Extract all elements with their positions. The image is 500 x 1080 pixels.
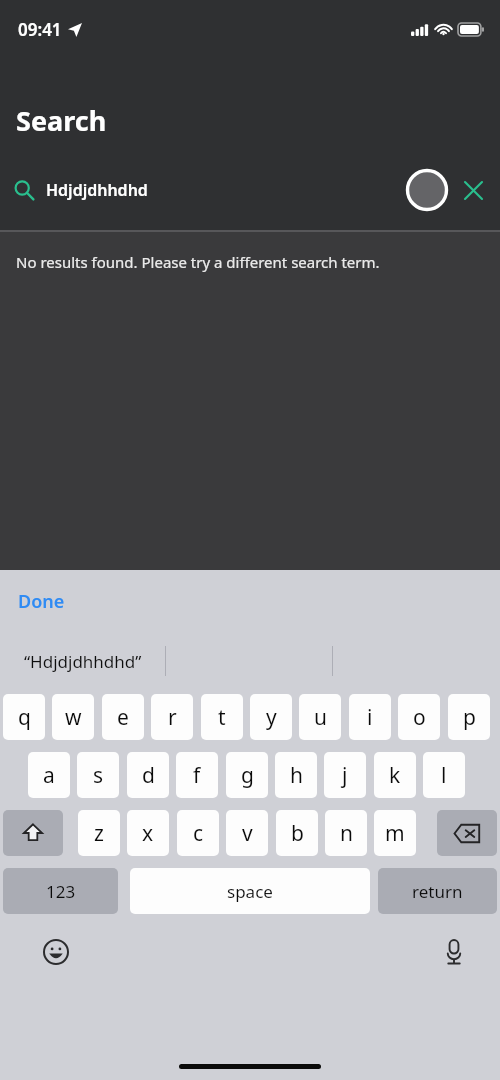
button[interactable]: g xyxy=(226,752,268,798)
button[interactable]: “Hdjdjdhhdhd” xyxy=(0,632,165,690)
button[interactable]: Backspace xyxy=(437,810,497,856)
staticText: Hdjdjdhhdhd xyxy=(46,179,148,201)
staticText: No results found. Please try a different… xyxy=(16,252,380,272)
staticText: 123 xyxy=(46,880,76,903)
button[interactable]: b xyxy=(276,810,318,856)
button[interactable]: s xyxy=(77,752,119,798)
button[interactable]: c xyxy=(177,810,219,856)
button[interactable]: Done xyxy=(12,583,71,620)
staticText: u xyxy=(314,703,327,732)
staticText: z xyxy=(94,819,104,848)
staticText: a xyxy=(43,761,55,790)
button[interactable]: i xyxy=(349,694,391,740)
staticText: j xyxy=(342,761,348,790)
button[interactable]: r xyxy=(151,694,193,740)
button[interactable]: n xyxy=(325,810,367,856)
button[interactable]: f xyxy=(176,752,218,798)
staticText: g xyxy=(241,761,254,790)
button[interactable]: l xyxy=(423,752,465,798)
button[interactable]: m xyxy=(374,810,416,856)
button[interactable]: z xyxy=(78,810,120,856)
button[interactable]: q xyxy=(3,694,45,740)
staticText: c xyxy=(193,819,204,848)
staticText: “Hdjdjdhhdhd” xyxy=(24,650,142,673)
staticText: m xyxy=(385,819,405,848)
staticText: 09:41 xyxy=(18,18,62,41)
button[interactable]: u xyxy=(299,694,341,740)
button[interactable]: 123 xyxy=(3,868,118,914)
button[interactable]: k xyxy=(374,752,416,798)
staticText: p xyxy=(463,703,476,732)
button[interactable]: o xyxy=(398,694,440,740)
staticText: b xyxy=(291,819,304,848)
button[interactable]: return xyxy=(378,868,497,914)
button[interactable]: p xyxy=(448,694,490,740)
button[interactable]: Profile xyxy=(404,167,450,213)
staticText: Done xyxy=(18,589,65,614)
button[interactable]: a xyxy=(28,752,70,798)
staticText: s xyxy=(93,761,104,790)
button[interactable]: Shift xyxy=(3,810,63,856)
staticText: return xyxy=(412,880,463,903)
button[interactable]: y xyxy=(250,694,292,740)
button[interactable]: j xyxy=(324,752,366,798)
staticText: o xyxy=(413,703,426,732)
staticText: k xyxy=(389,761,401,790)
staticText: d xyxy=(142,761,155,790)
staticText: t xyxy=(218,703,226,732)
staticText: q xyxy=(18,703,31,732)
staticText: Search xyxy=(16,102,107,139)
staticText: w xyxy=(65,703,82,732)
staticText: i xyxy=(367,703,373,732)
button[interactable]: h xyxy=(275,752,317,798)
button[interactable]: e xyxy=(102,694,144,740)
button[interactable]: w xyxy=(52,694,94,740)
staticText: e xyxy=(117,703,129,732)
staticText: r xyxy=(168,703,177,732)
staticText: f xyxy=(193,761,201,790)
button[interactable]: space xyxy=(130,868,370,914)
staticText: y xyxy=(266,703,277,732)
button[interactable]: Dictation xyxy=(432,930,476,974)
staticText: n xyxy=(340,819,353,848)
button[interactable]: x xyxy=(127,810,169,856)
button[interactable]: Clear search xyxy=(456,173,490,207)
button[interactable]: Emoji keyboard xyxy=(34,930,78,974)
button[interactable]: d xyxy=(127,752,169,798)
staticText: space xyxy=(227,880,273,903)
staticText: v xyxy=(242,819,253,848)
staticText: x xyxy=(142,819,154,848)
button[interactable]: t xyxy=(201,694,243,740)
staticText: l xyxy=(441,761,447,790)
staticText: h xyxy=(290,761,303,790)
button[interactable]: v xyxy=(226,810,268,856)
